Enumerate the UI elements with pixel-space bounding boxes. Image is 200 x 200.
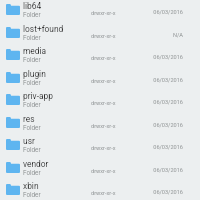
staticText: Folder (23, 34, 41, 41)
staticText: plugin (23, 69, 46, 79)
staticText: drwxr-xr-x (91, 78, 116, 85)
staticText: drwxr-xr-x (91, 168, 116, 175)
button[interactable]: lost+found (0, 23, 200, 46)
staticText: Folder (23, 11, 41, 18)
button[interactable]: xbin (0, 180, 200, 200)
staticText: 06/03/2016 (143, 77, 183, 84)
button[interactable]: usr (0, 135, 200, 158)
staticText: 06/03/2016 (143, 122, 183, 129)
staticText: drwxr-xr-x (91, 123, 116, 130)
staticText: N/A (143, 32, 183, 39)
button[interactable]: res (0, 113, 200, 136)
button[interactable]: vendor (0, 158, 200, 181)
staticText: Folder (23, 101, 41, 108)
staticText: 06/03/2016 (143, 9, 183, 16)
staticText: drwxr-xr-x (91, 55, 116, 62)
staticText: 06/03/2016 (143, 99, 183, 106)
staticText: Folder (23, 79, 41, 86)
staticText: Folder (23, 191, 41, 198)
staticText: Folder (23, 56, 41, 63)
staticText: xbin (23, 181, 39, 191)
staticText: lib64 (23, 1, 42, 11)
staticText: priv-app (23, 91, 53, 101)
staticText: drwxr-xr-x (91, 33, 116, 40)
staticText: vendor (23, 159, 49, 169)
staticText: drwxr-xr-x (91, 100, 116, 107)
staticText: Folder (23, 124, 41, 131)
staticText: 06/03/2016 (143, 189, 183, 196)
staticText: 06/03/2016 (143, 167, 183, 174)
staticText: 06/03/2016 (143, 144, 183, 151)
button[interactable]: plugin (0, 68, 200, 91)
button[interactable]: lib64 (0, 0, 200, 23)
staticText: drwxr-xr-x (91, 190, 116, 197)
staticText: res (23, 114, 35, 124)
button[interactable]: priv-app (0, 90, 200, 113)
staticText: 06/03/2016 (143, 54, 183, 61)
staticText: Folder (23, 146, 41, 153)
staticText: drwxr-xr-x (91, 10, 116, 17)
staticText: Folder (23, 169, 41, 176)
staticText: usr (23, 136, 35, 146)
staticText: media (23, 46, 47, 56)
staticText: drwxr-xr-x (91, 145, 116, 152)
staticText: lost+found (23, 24, 64, 34)
button[interactable]: media (0, 45, 200, 68)
